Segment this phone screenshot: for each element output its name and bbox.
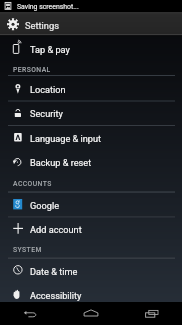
button[interactable]: Backup & reset (0, 150, 182, 174)
staticText: Tap & pay (30, 44, 70, 55)
staticText: Google (30, 200, 60, 211)
button[interactable]: Security (0, 101, 182, 126)
staticText: Add account (30, 224, 82, 235)
button[interactable]: Date & time (0, 259, 182, 284)
button[interactable]: Home (60, 302, 121, 325)
staticText: PERSONAL (13, 66, 51, 74)
button[interactable]: Tap & pay (0, 37, 182, 61)
staticText: Backup & reset (30, 157, 92, 168)
staticText: Accessibility (30, 290, 82, 301)
staticText: Settings (25, 20, 59, 31)
button[interactable]: Language & input (0, 126, 182, 151)
staticText: Location (30, 84, 66, 95)
staticText: Language & input (30, 133, 102, 144)
button[interactable]: Google (0, 193, 182, 218)
button[interactable]: Accessibility (0, 283, 182, 307)
button[interactable]: Back (0, 302, 60, 325)
button[interactable]: Location (0, 77, 182, 101)
staticText: Date & time (30, 266, 78, 277)
button[interactable]: Recent apps (121, 302, 182, 325)
staticText: SYSTEM (13, 246, 42, 254)
button[interactable]: Add account (0, 217, 182, 241)
staticText: Saving screenshot... (17, 3, 79, 11)
staticText: ACCOUNTS (13, 180, 52, 188)
staticText: Security (30, 108, 63, 119)
